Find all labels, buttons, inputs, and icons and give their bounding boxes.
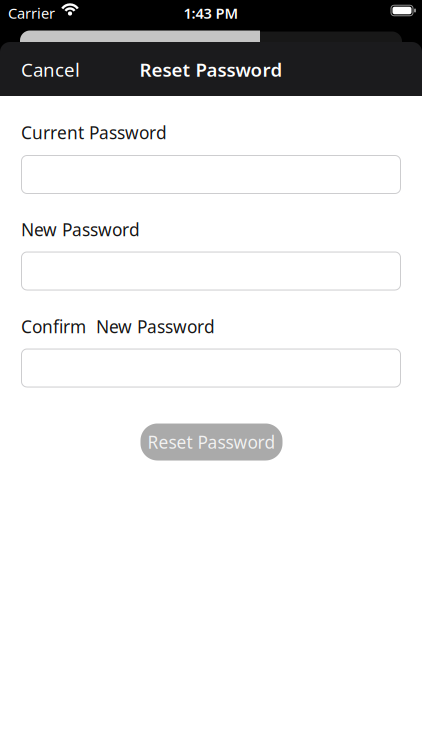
staticText: Cancel xyxy=(21,57,80,82)
staticText: Reset Password xyxy=(139,57,282,82)
staticText: New Password xyxy=(21,218,140,241)
staticText: 1:43 PM xyxy=(183,3,238,23)
staticText: Carrier xyxy=(8,3,55,23)
button[interactable]: Cancel xyxy=(21,57,80,82)
staticText: Confirm New Password xyxy=(21,315,215,338)
staticText: Current Password xyxy=(21,121,167,144)
button[interactable]: Reset Password xyxy=(140,423,282,460)
staticText: Reset Password xyxy=(147,430,275,453)
